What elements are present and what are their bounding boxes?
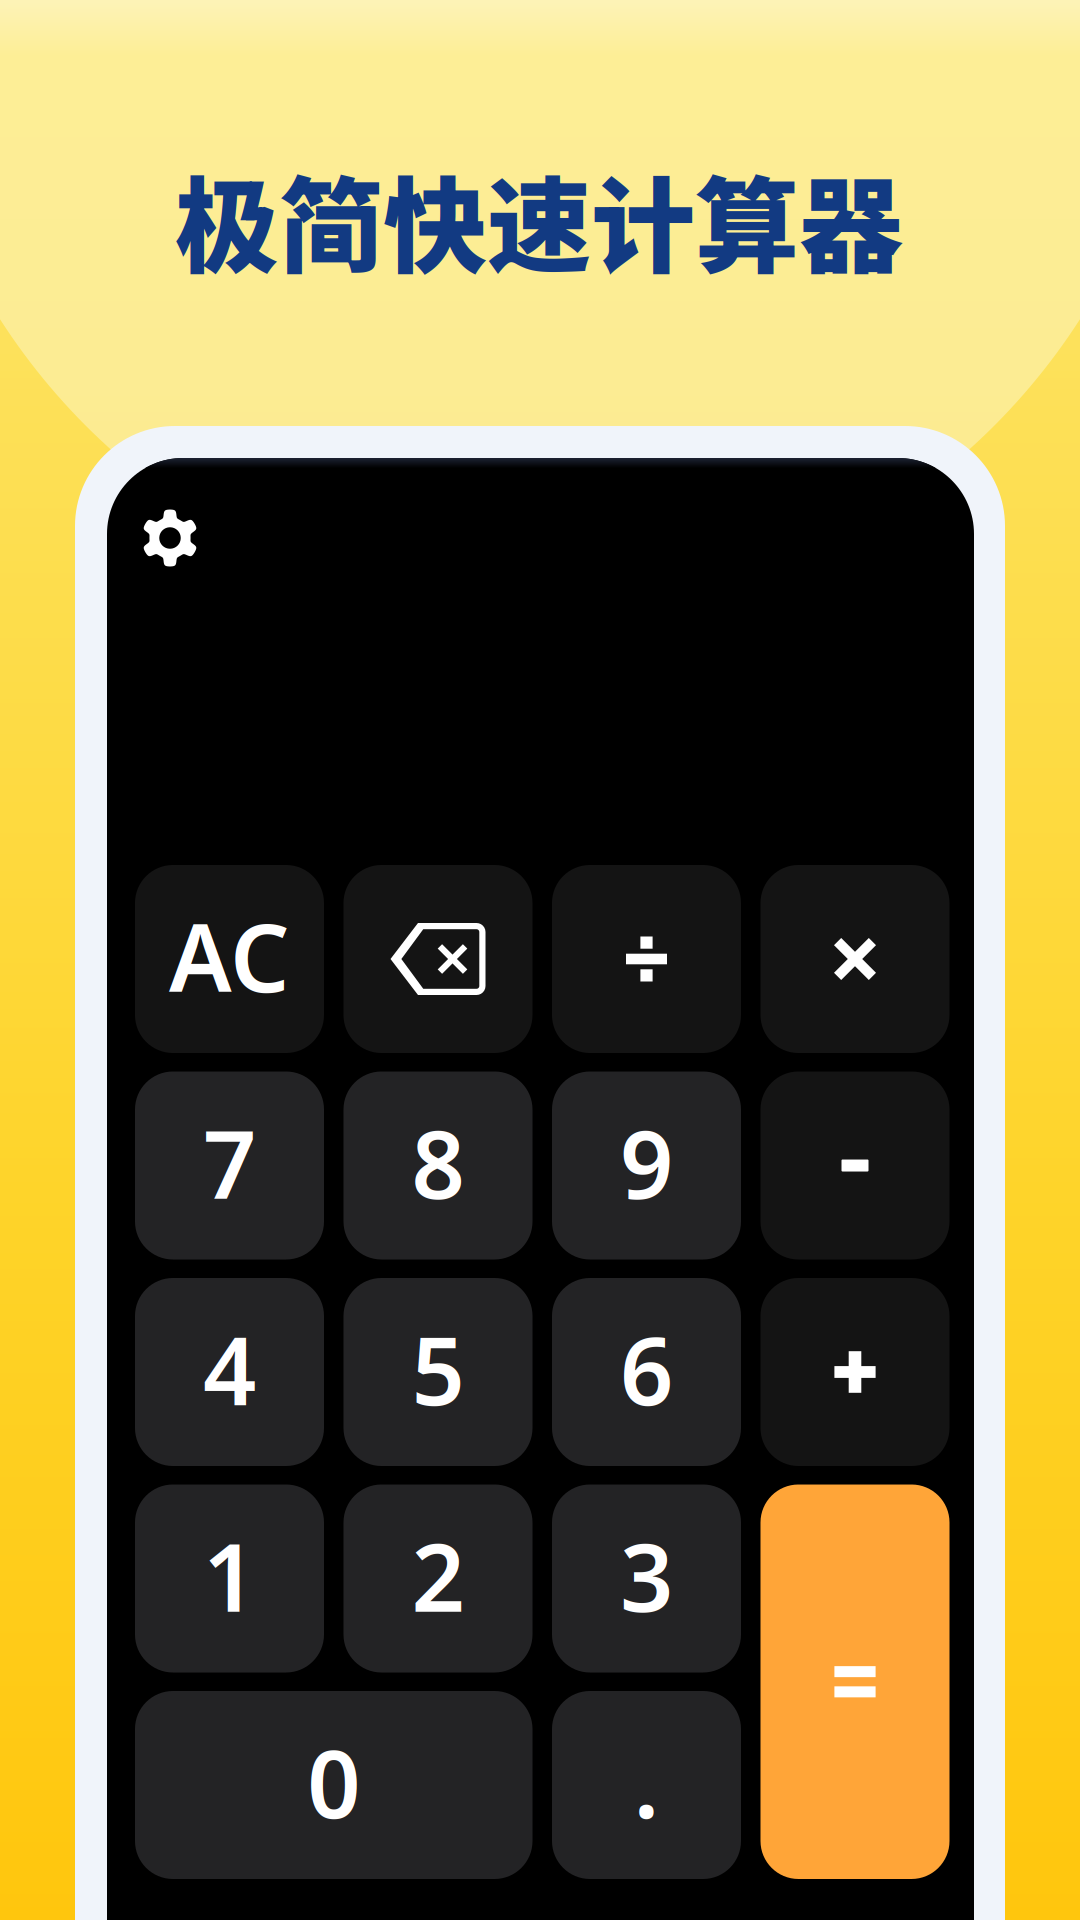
button[interactable]: 5 [343,1278,532,1466]
button[interactable]: 2 [343,1484,532,1672]
button[interactable]: 1 [135,1484,324,1672]
staticText: . [633,1720,659,1844]
staticText: 8 [411,1100,464,1224]
button[interactable]: 8 [343,1071,532,1259]
staticText: 极简快速计算器 [175,144,903,294]
button[interactable]: . [552,1691,741,1879]
button[interactable]: 7 [135,1071,324,1259]
staticText: 2 [411,1513,464,1637]
button[interactable]: 3 [552,1484,741,1672]
staticText: 6 [620,1307,673,1431]
staticText: 7 [203,1100,256,1224]
button[interactable]: Plus [760,1278,949,1466]
button[interactable]: Settings [122,490,218,586]
button[interactable]: 4 [135,1278,324,1466]
button[interactable]: Equals [760,1484,949,1879]
button[interactable]: Multiply [760,865,949,1053]
staticText: 1 [203,1513,256,1637]
staticText: 0 [307,1720,360,1844]
button[interactable]: 6 [552,1278,741,1466]
button[interactable]: 0 [135,1691,532,1879]
staticText: 4 [203,1307,256,1431]
staticText: AC [169,894,290,1018]
button[interactable]: Divide [552,865,741,1053]
button[interactable]: AC [135,865,324,1053]
button[interactable]: Minus [760,1071,949,1259]
staticText: 9 [620,1100,673,1224]
staticText: 3 [620,1513,673,1637]
button[interactable]: 9 [552,1071,741,1259]
button[interactable]: Delete [343,865,532,1053]
staticText: 5 [411,1307,464,1431]
